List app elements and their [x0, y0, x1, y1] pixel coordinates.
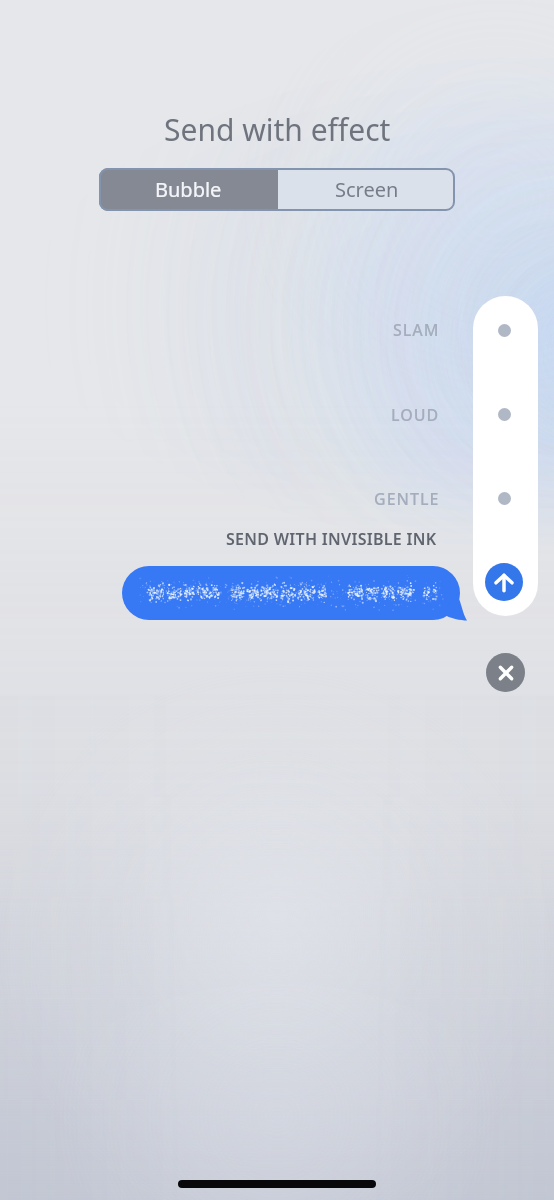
button[interactable]: SEND WITH INVISIBLE INK	[0, 527, 437, 551]
button[interactable]: Dismiss effects picker	[0, 0, 554, 1200]
staticText: Bubble	[155, 176, 222, 203]
button[interactable]: GENTLE	[0, 487, 440, 511]
button[interactable]: Slam effect	[488, 314, 520, 346]
button[interactable]: Send	[485, 563, 523, 601]
button[interactable]: Message bubble	[122, 566, 467, 620]
staticText: SLAM	[393, 319, 440, 341]
staticText: GENTLE	[374, 488, 440, 510]
button[interactable]: Screen	[278, 168, 455, 211]
button[interactable]: SLAM	[0, 318, 440, 342]
button[interactable]: Bubble	[99, 168, 278, 211]
staticText: LOUD	[391, 404, 440, 426]
button[interactable]: Close	[486, 653, 525, 692]
button[interactable]: Loud effect	[488, 398, 520, 430]
staticText: Screen	[335, 176, 399, 203]
staticText: SEND WITH INVISIBLE INK	[226, 528, 437, 550]
button[interactable]: LOUD	[0, 403, 440, 427]
button[interactable]: Gentle effect	[488, 482, 520, 514]
staticText: Send with effect	[164, 109, 391, 150]
